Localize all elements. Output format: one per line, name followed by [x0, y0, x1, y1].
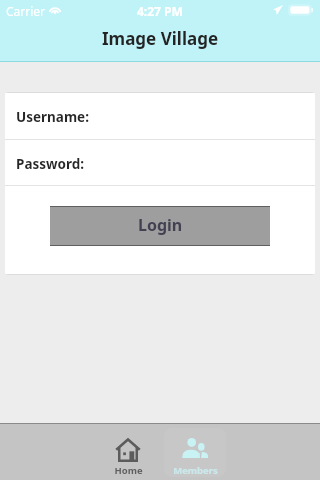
- staticText: Members: [173, 464, 218, 477]
- button[interactable]: Password:: [5, 140, 315, 185]
- staticText: 4:27 PM: [137, 3, 183, 19]
- button[interactable]: Login: [50, 207, 270, 245]
- staticText: Login: [138, 214, 183, 236]
- staticText: Carrier: [6, 3, 46, 19]
- staticText: Image Village: [102, 27, 219, 50]
- staticText: Password:: [16, 155, 85, 173]
- staticText: Username:: [16, 108, 89, 126]
- button[interactable]: Home: [97, 428, 159, 477]
- button[interactable]: Username:: [5, 93, 315, 139]
- button[interactable]: Members: [164, 428, 226, 477]
- staticText: Home: [114, 464, 143, 477]
